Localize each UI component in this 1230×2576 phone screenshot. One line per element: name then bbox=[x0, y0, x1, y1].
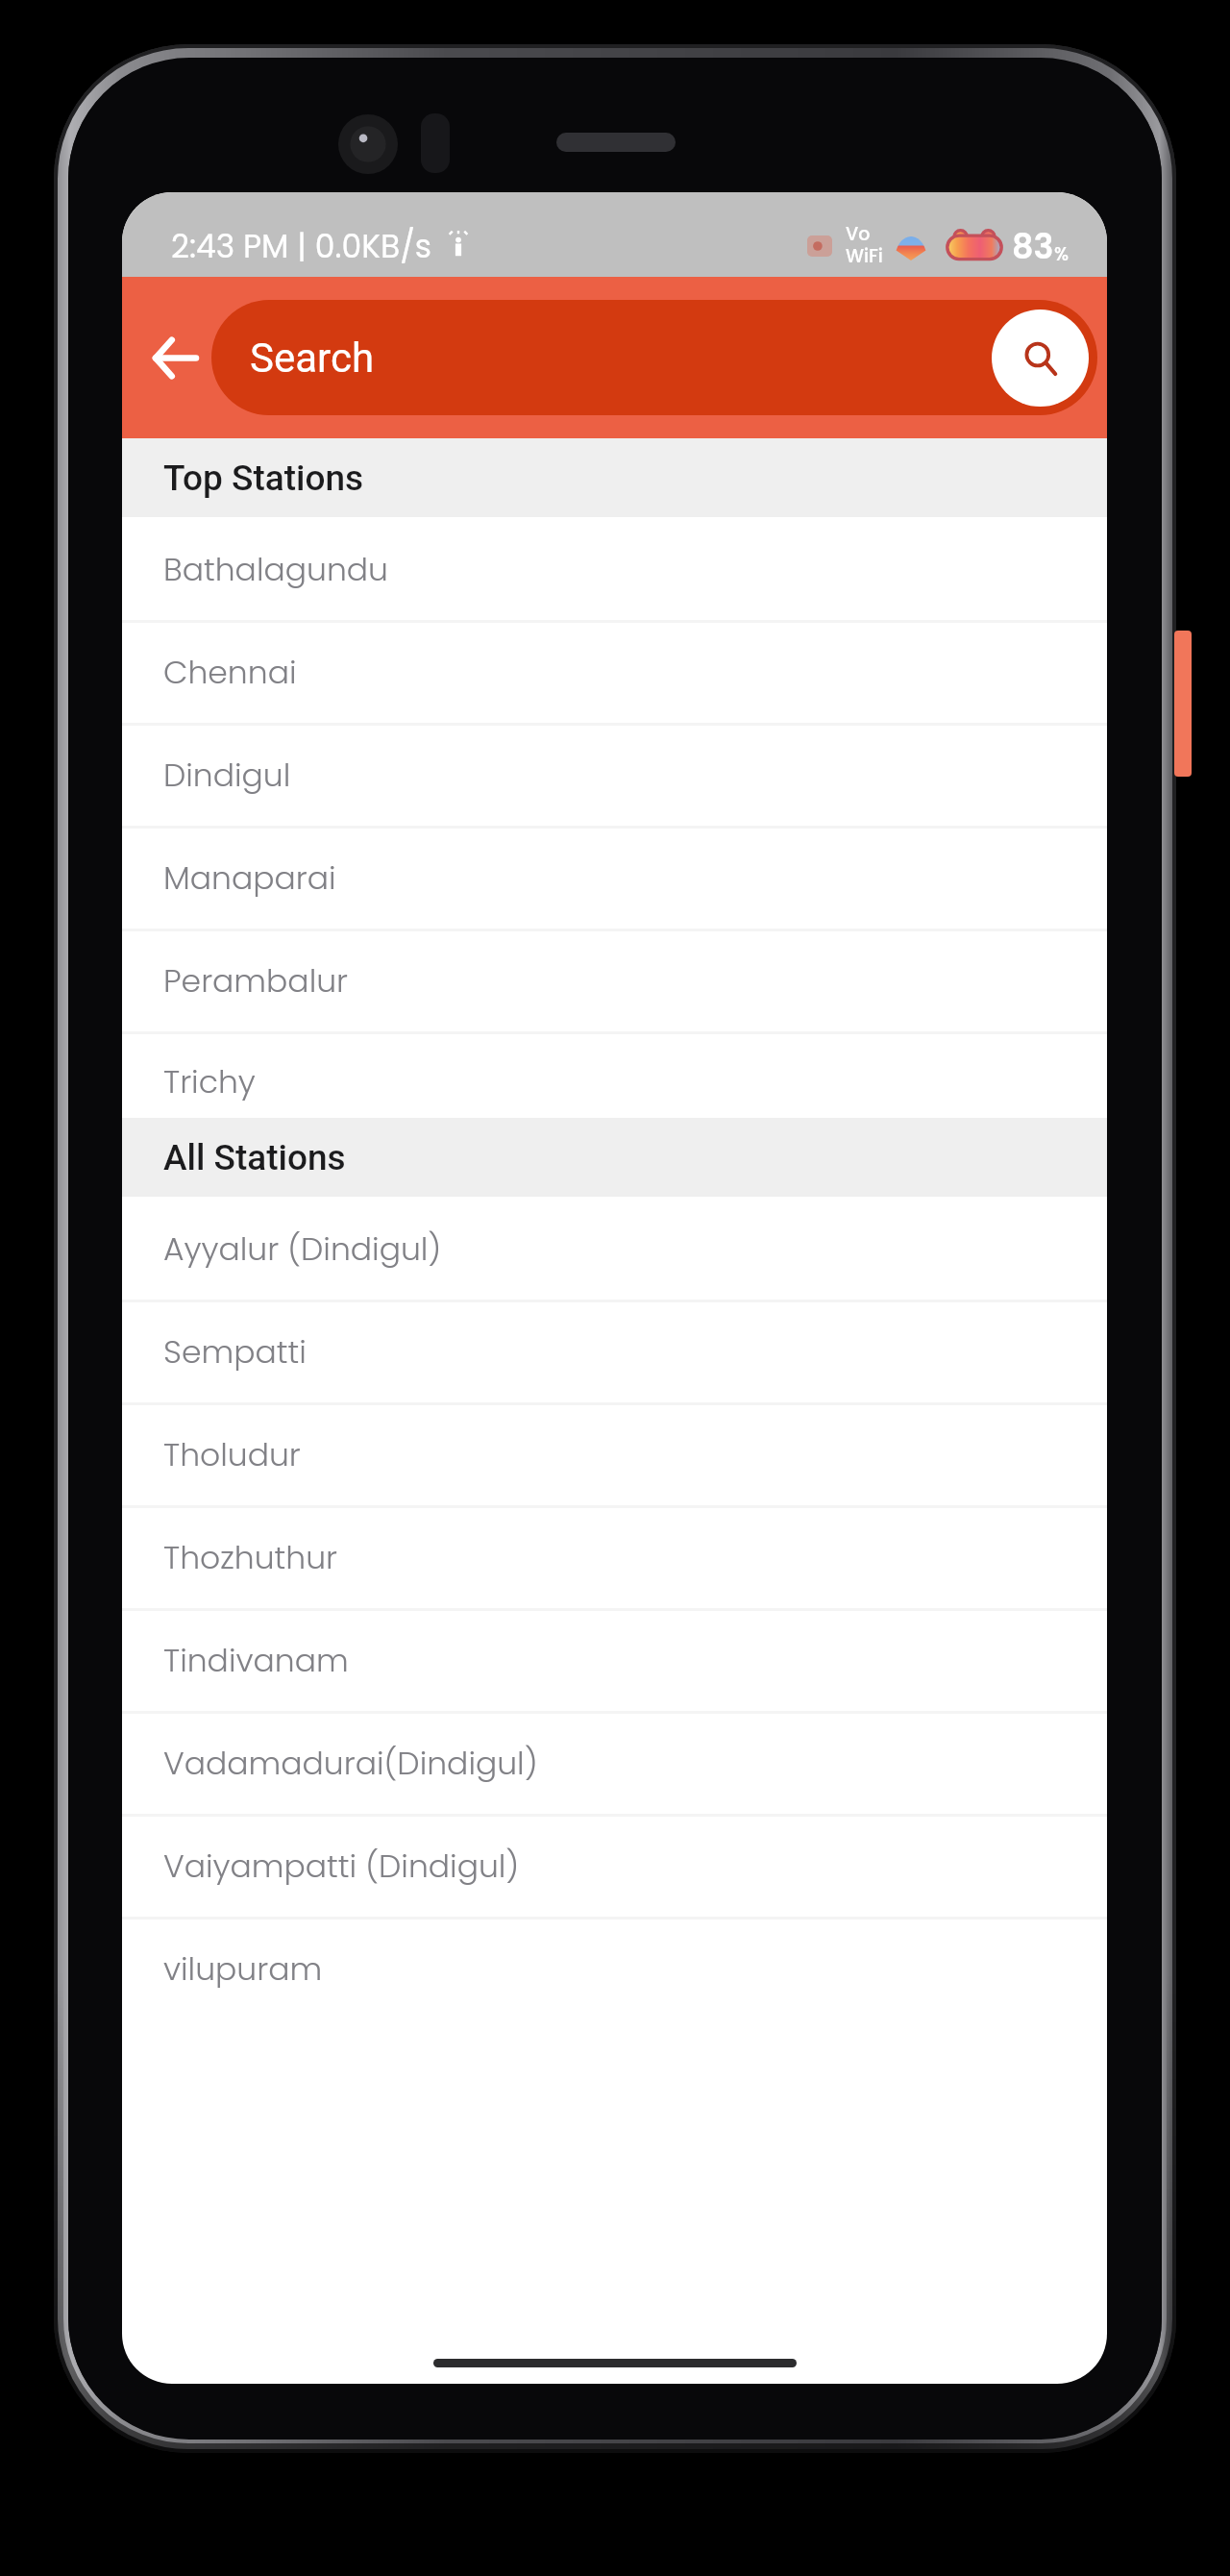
staticText: Perambalur bbox=[163, 958, 349, 1003]
button[interactable]: Back bbox=[134, 317, 214, 398]
staticText: Thozhuthur bbox=[163, 1535, 338, 1579]
button[interactable]: Search bbox=[211, 300, 1097, 415]
staticText: Tindivanam bbox=[163, 1638, 349, 1682]
staticText: Bathalagundu bbox=[163, 547, 388, 591]
button[interactable]: Vadamadurai(Dindigul) bbox=[122, 1711, 1107, 1814]
button[interactable]: Search bbox=[992, 310, 1089, 407]
staticText: All Stations bbox=[163, 1137, 346, 1178]
button[interactable]: vilupuram bbox=[122, 1917, 1107, 2019]
button[interactable]: Bathalagundu bbox=[122, 517, 1107, 620]
button[interactable]: Sempatti bbox=[122, 1300, 1107, 1402]
button[interactable]: Perambalur bbox=[122, 929, 1107, 1031]
button[interactable]: Tindivanam bbox=[122, 1608, 1107, 1711]
staticText: Vaiyampatti (Dindigul) bbox=[163, 1844, 520, 1888]
staticText: Search bbox=[250, 334, 375, 382]
button[interactable]: Trichy bbox=[122, 1031, 1107, 1118]
button[interactable]: Dindigul bbox=[122, 723, 1107, 826]
staticText: Manaparai bbox=[163, 855, 336, 900]
staticText: Trichy bbox=[163, 1059, 256, 1103]
staticText: 83 bbox=[1012, 223, 1054, 270]
staticText: Dindigul bbox=[163, 753, 291, 797]
button[interactable]: Tholudur bbox=[122, 1402, 1107, 1505]
staticText: Top Stations bbox=[163, 458, 364, 499]
staticText: Vo WiFi bbox=[846, 221, 883, 269]
button[interactable]: Chennai bbox=[122, 620, 1107, 723]
staticText: Sempatti bbox=[163, 1329, 307, 1374]
button[interactable]: Ayyalur (Dindigul) bbox=[122, 1197, 1107, 1300]
button[interactable]: Manaparai bbox=[122, 826, 1107, 929]
button[interactable]: Vaiyampatti (Dindigul) bbox=[122, 1814, 1107, 1917]
staticText: % bbox=[1054, 241, 1070, 267]
button[interactable]: Thozhuthur bbox=[122, 1505, 1107, 1608]
staticText: vilupuram bbox=[163, 1946, 323, 1991]
staticText: Vadamadurai(Dindigul) bbox=[163, 1741, 538, 1785]
staticText: 2:43 PM | 0.0KB/s bbox=[171, 224, 432, 268]
staticText: Tholudur bbox=[163, 1432, 301, 1476]
staticText: Ayyalur (Dindigul) bbox=[163, 1226, 442, 1271]
staticText: Chennai bbox=[163, 650, 297, 694]
